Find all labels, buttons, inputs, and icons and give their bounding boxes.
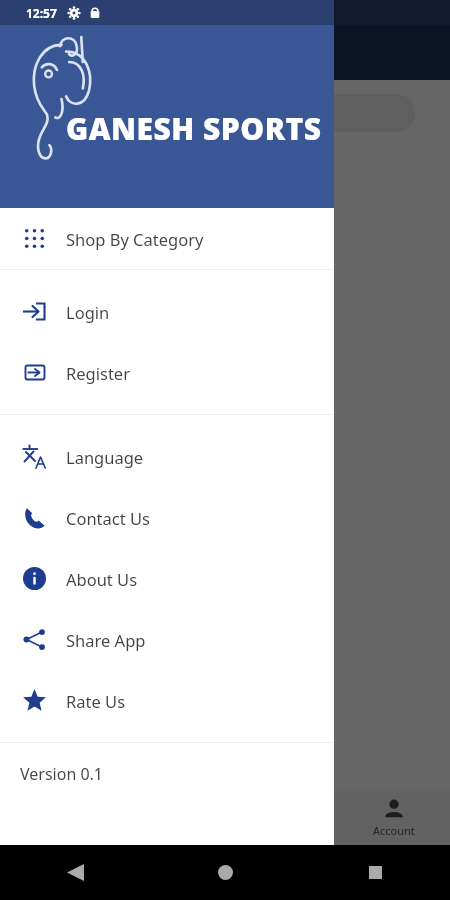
staticText: Share App [66, 629, 146, 651]
button[interactable]: Login [0, 281, 334, 342]
button[interactable]: Contact Us [0, 487, 334, 548]
staticText: Register [66, 362, 130, 384]
staticText: Search here [58, 104, 136, 123]
staticText: GANESH SPORTS [66, 108, 322, 149]
staticText: Contact Us [66, 507, 150, 529]
staticText: Version 0.1 [20, 763, 104, 785]
button[interactable]: Language [0, 426, 334, 487]
button[interactable]: Rate Us [0, 670, 334, 731]
staticText: Shop By Category [66, 228, 204, 250]
button[interactable]: Orders [224, 791, 337, 845]
staticText: Login [66, 301, 110, 323]
staticText: About Us [66, 568, 138, 590]
button[interactable]: Account [337, 791, 450, 845]
staticText: Language [66, 446, 144, 468]
button[interactable]: Version 0.1 [0, 743, 334, 805]
button[interactable]: Register [0, 342, 334, 403]
button[interactable]: Shop By Category [0, 208, 334, 269]
staticText: 12:57 [26, 5, 57, 21]
button[interactable]: Share App [0, 609, 334, 670]
staticText: Rate Us [66, 690, 126, 712]
button[interactable]: Search here [14, 94, 415, 132]
staticText: Account [373, 823, 415, 838]
button[interactable]: About Us [0, 548, 334, 609]
